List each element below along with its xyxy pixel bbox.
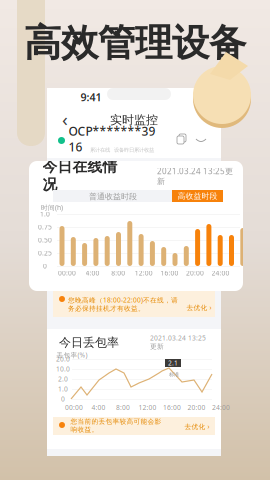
staticText: 24:00 xyxy=(212,403,230,412)
button[interactable]: Back xyxy=(62,107,68,131)
staticText: ‹ xyxy=(62,107,68,131)
staticText: 累计在线 设备昨日累计收益 xyxy=(90,147,154,153)
staticText: 今日在线情况 xyxy=(42,157,117,193)
staticText: 0.75 xyxy=(38,223,52,231)
staticText: 4:00 xyxy=(91,403,105,412)
staticText: 20:00 xyxy=(186,269,204,277)
staticText: OCP*******3916 xyxy=(68,123,155,155)
button[interactable]: Copy device ID xyxy=(177,134,189,146)
staticText: 今日丢包率 xyxy=(59,335,119,350)
staticText: 8:00 xyxy=(111,269,125,277)
staticText: 高效管理设备 xyxy=(24,20,246,66)
staticText: 12:00 xyxy=(135,269,153,277)
staticText: 0.50 xyxy=(38,236,52,244)
staticText: 丢包率(%) xyxy=(56,351,87,359)
staticText: 时间(h) xyxy=(41,203,63,212)
staticText: 普通收益时段 xyxy=(89,192,137,201)
staticText: 9:41 xyxy=(80,90,101,104)
staticText: 24:00 xyxy=(212,269,230,277)
staticText: 2.0 xyxy=(58,375,68,383)
staticText: 0 xyxy=(61,395,65,403)
staticText: 实时监控 xyxy=(110,113,158,127)
staticText: 2021.03.24 13:25更新 xyxy=(157,166,233,186)
staticText: 标准 xyxy=(169,371,179,378)
staticText: 您晚高峰（18:00-22:00)不在线，请务必保持挂机才有收益。 xyxy=(68,295,178,312)
staticText: 8:00 xyxy=(116,403,130,412)
staticText: 00:00 xyxy=(65,403,83,412)
staticText: 您当前的丢包率较高可能会影响收益。 xyxy=(70,417,161,434)
staticText: 10.0 xyxy=(56,365,70,373)
staticText: 0 xyxy=(43,262,47,270)
button[interactable]: 您晚高峰（18:00-22:00)不在线，请务必保持挂机才有收益。 xyxy=(53,291,215,317)
staticText: 高收益时段 xyxy=(177,191,217,201)
staticText: 去优化 › xyxy=(186,303,211,312)
staticText: 去优化 › xyxy=(184,422,209,431)
staticText: 12:00 xyxy=(138,403,156,412)
staticText: 1.0 xyxy=(40,210,50,218)
button[interactable]: 您当前的丢包率较高可能会影响收益。 xyxy=(53,417,215,435)
staticText: 00:00 xyxy=(58,269,76,277)
staticText: 20:00 xyxy=(187,403,205,412)
staticText: 20.0 xyxy=(56,355,70,363)
staticText: 4:00 xyxy=(86,269,100,277)
staticText: 16:00 xyxy=(160,269,178,277)
staticText: 2021.03.24 13:25更新 xyxy=(150,333,206,350)
staticText: 1.0 xyxy=(58,385,68,393)
button[interactable]: Hide earnings xyxy=(195,134,207,146)
button[interactable]: 普通收益时段 xyxy=(89,192,137,201)
button[interactable]: 高收益时段 xyxy=(172,190,223,202)
staticText: 0.25 xyxy=(38,249,52,257)
staticText: 2.1 xyxy=(168,359,178,367)
staticText: 16:00 xyxy=(163,403,181,412)
